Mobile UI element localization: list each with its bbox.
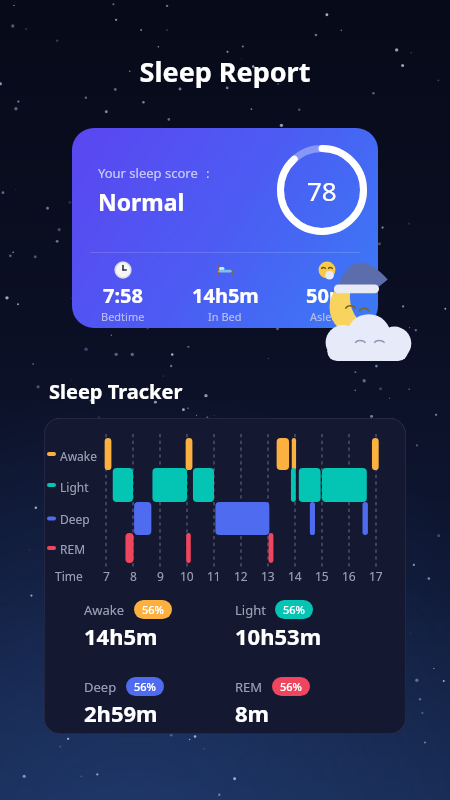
other: Sleeping moon illustration [306, 266, 418, 364]
staticText: Bedtime [101, 309, 145, 324]
staticText: In Bed [208, 309, 242, 324]
button[interactable]: REM [235, 677, 386, 728]
staticText: 17 [369, 568, 383, 584]
button[interactable]: 7:58 [72, 253, 174, 328]
button[interactable]: Your sleep score ： [72, 128, 378, 328]
staticText: 56% [134, 679, 156, 694]
button[interactable]: Light [235, 600, 386, 651]
staticText: 78 [307, 173, 337, 208]
staticText: 14h5m [192, 282, 259, 309]
staticText: Awake [60, 448, 98, 464]
staticText: Time [55, 568, 83, 584]
staticText: Normal [98, 186, 185, 217]
staticText: 13 [261, 568, 275, 584]
staticText: Awake [84, 601, 125, 619]
staticText: 11 [207, 568, 221, 584]
staticText: 56% [142, 602, 164, 617]
staticText: 9 [157, 568, 164, 584]
staticText: Deep [60, 511, 90, 527]
staticText: Light [235, 601, 266, 619]
staticText: 14 [288, 568, 302, 584]
staticText: 12 [234, 568, 248, 584]
staticText: 7 [103, 568, 110, 584]
staticText: 50m [306, 282, 349, 309]
staticText: 7:58 [103, 282, 143, 309]
button[interactable]: Awake [84, 600, 235, 651]
staticText: REM [235, 678, 263, 696]
staticText: REM [60, 541, 86, 557]
staticText: 15 [315, 568, 329, 584]
button[interactable]: Awake [44, 418, 406, 734]
staticText: Your sleep score ： [98, 164, 215, 182]
button[interactable]: 50m [276, 253, 378, 328]
staticText: Sleep Report [0, 53, 450, 90]
staticText: 2h59m [84, 698, 158, 728]
staticText: Light [60, 479, 89, 495]
staticText: 56% [280, 679, 302, 694]
staticText: Deep [84, 678, 117, 696]
staticText: 10 [180, 568, 194, 584]
staticText: 8m [235, 698, 270, 728]
staticText: Sleep Tracker [49, 378, 183, 405]
staticText: 10h53m [235, 621, 322, 651]
staticText: 14h5m [84, 621, 158, 651]
staticText: 16 [342, 568, 356, 584]
button[interactable]: 14h5m [174, 253, 276, 328]
staticText: 8 [130, 568, 137, 584]
staticText: Asleep [310, 309, 345, 324]
button[interactable]: Deep [84, 677, 235, 728]
staticText: 56% [283, 602, 305, 617]
